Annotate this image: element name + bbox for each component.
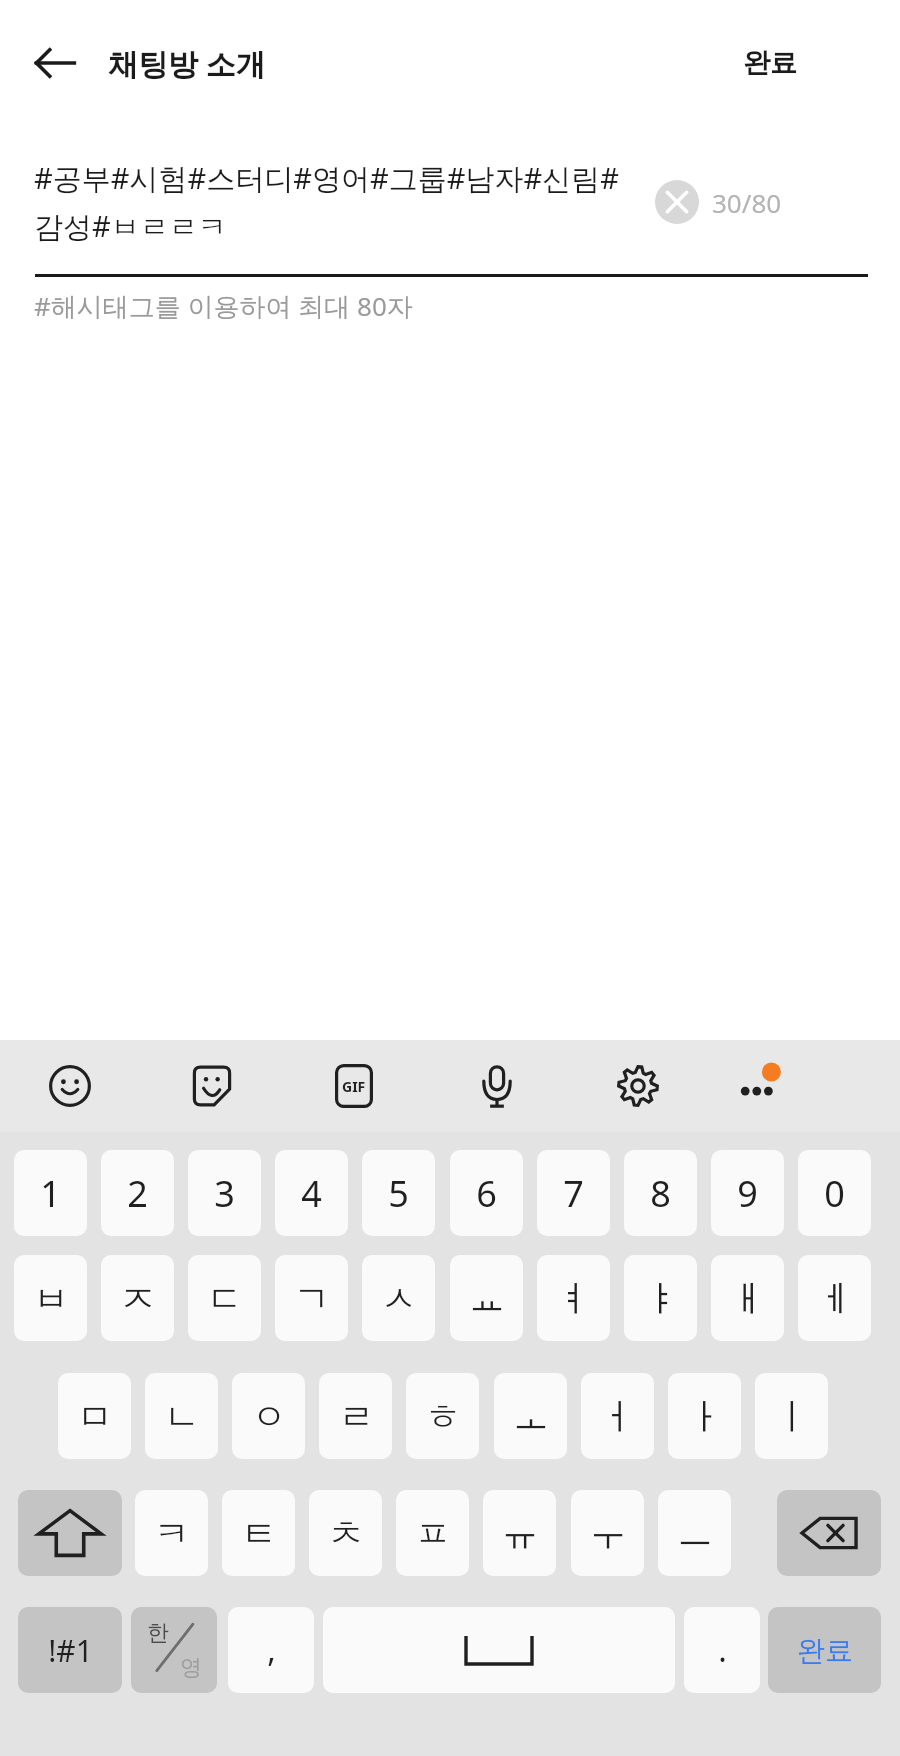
staticText: ㅌ — [241, 1511, 277, 1556]
button[interactable]: ㅡ — [658, 1490, 731, 1576]
staticText: ㅔ — [817, 1276, 853, 1321]
staticText: 1 — [40, 1169, 61, 1218]
button[interactable]: Emoji — [38, 1054, 102, 1118]
staticText: ㅊ — [328, 1511, 364, 1556]
button[interactable]: ㅛ — [450, 1255, 523, 1341]
button[interactable]: ㅍ — [396, 1490, 469, 1576]
staticText: ㄹ — [338, 1394, 374, 1439]
staticText: 채팅방 소개 — [108, 43, 266, 84]
staticText: ㄱ — [294, 1276, 330, 1321]
staticText: ㅅ — [381, 1276, 417, 1321]
staticText: ㅕ — [556, 1276, 592, 1321]
button[interactable]: ㅅ — [362, 1255, 435, 1341]
button[interactable]: ㄴ — [145, 1373, 218, 1459]
button[interactable]: !#1 — [18, 1607, 122, 1693]
staticText: 3 — [214, 1169, 235, 1218]
button[interactable]: ㄹ — [319, 1373, 392, 1459]
button[interactable]: 7 — [537, 1150, 610, 1236]
button[interactable]: 0 — [798, 1150, 871, 1236]
staticText: 8 — [650, 1169, 671, 1218]
staticText: !#1 — [48, 1630, 93, 1671]
staticText: ㅂ — [33, 1276, 69, 1321]
button[interactable]: 5 — [362, 1150, 435, 1236]
staticText: . — [718, 1628, 727, 1672]
staticText: ㅏ — [687, 1394, 723, 1439]
button[interactable]: More options — [720, 1054, 800, 1118]
button[interactable]: ㅏ — [668, 1373, 741, 1459]
button[interactable]: 3 — [188, 1150, 261, 1236]
button[interactable]: 8 — [624, 1150, 697, 1236]
button[interactable]: 완료 — [700, 30, 840, 96]
staticText: ㅜ — [590, 1511, 626, 1556]
button[interactable]: ㅌ — [222, 1490, 295, 1576]
button[interactable]: Korean English toggle — [131, 1607, 217, 1693]
button[interactable]: ㅗ — [494, 1373, 567, 1459]
staticText: 0 — [824, 1169, 845, 1218]
staticText: 영 — [180, 1654, 202, 1682]
button[interactable]: Space — [323, 1607, 675, 1693]
staticText: GIF — [342, 1077, 366, 1096]
button[interactable]: 4 — [275, 1150, 348, 1236]
button[interactable]: ㄷ — [188, 1255, 261, 1341]
button[interactable]: . — [684, 1607, 760, 1693]
button[interactable]: ㅁ — [58, 1373, 131, 1459]
button[interactable]: ㅐ — [711, 1255, 784, 1341]
staticText: ㅠ — [502, 1511, 538, 1556]
button[interactable]: ㄱ — [275, 1255, 348, 1341]
button[interactable]: GIF — [322, 1054, 386, 1118]
button[interactable]: 2 — [101, 1150, 174, 1236]
button[interactable]: Backspace — [777, 1490, 881, 1576]
staticText: ㅁ — [77, 1394, 113, 1439]
button[interactable]: ㅇ — [232, 1373, 305, 1459]
staticText: ㅛ — [469, 1276, 505, 1321]
button[interactable]: ㅣ — [755, 1373, 828, 1459]
staticText: 완료 — [743, 46, 797, 80]
staticText: ㅣ — [774, 1394, 810, 1439]
staticText: ㄴ — [164, 1394, 200, 1439]
button[interactable]: Clear text — [655, 180, 699, 224]
button[interactable]: Shift — [18, 1490, 122, 1576]
button[interactable]: ㅋ — [135, 1490, 208, 1576]
button[interactable]: 1 — [14, 1150, 87, 1236]
staticText: ㅗ — [513, 1394, 549, 1439]
button[interactable]: ㅔ — [798, 1255, 871, 1341]
staticText: ㅎ — [425, 1394, 461, 1439]
staticText: 한 — [147, 1619, 169, 1647]
staticText: ㅐ — [730, 1276, 766, 1321]
staticText: ㅇ — [251, 1394, 287, 1439]
staticText: 6 — [476, 1169, 497, 1218]
button[interactable]: ㅊ — [309, 1490, 382, 1576]
staticText: ㅡ — [677, 1511, 713, 1556]
staticText: 30/80 — [712, 185, 782, 220]
staticText: 2 — [127, 1169, 148, 1218]
button[interactable]: ㅕ — [537, 1255, 610, 1341]
button[interactable]: Back — [18, 30, 92, 96]
button[interactable]: Settings — [606, 1054, 670, 1118]
button[interactable]: 6 — [450, 1150, 523, 1236]
staticText: 7 — [563, 1169, 584, 1218]
staticText: 4 — [301, 1169, 322, 1218]
staticText: 완료 — [797, 1633, 853, 1668]
button[interactable]: ㅓ — [581, 1373, 654, 1459]
button[interactable]: ㅠ — [483, 1490, 556, 1576]
staticText: #공부#시험#스터디#영어#그룹#남자#신림#감성#ㅂㄹㄹㅋ — [34, 158, 634, 246]
staticText: , — [267, 1628, 276, 1672]
staticText: ㄷ — [207, 1276, 243, 1321]
button[interactable]: ㅎ — [406, 1373, 479, 1459]
staticText: #해시태그를 이용하여 최대 80자 — [34, 288, 413, 324]
staticText: 5 — [388, 1169, 409, 1218]
button[interactable]: ㅜ — [571, 1490, 644, 1576]
button[interactable]: 9 — [711, 1150, 784, 1236]
button[interactable]: Voice input — [465, 1054, 529, 1118]
button[interactable]: ㅑ — [624, 1255, 697, 1341]
button[interactable]: 완료 — [768, 1607, 881, 1693]
staticText: ㅑ — [643, 1276, 679, 1321]
staticText: ㅋ — [154, 1511, 190, 1556]
staticText: ㅍ — [415, 1511, 451, 1556]
staticText: 9 — [737, 1169, 758, 1218]
button[interactable]: ㅈ — [101, 1255, 174, 1341]
button[interactable]: Stickers — [180, 1054, 244, 1118]
staticText: ㅈ — [120, 1276, 156, 1321]
button[interactable]: ㅂ — [14, 1255, 87, 1341]
button[interactable]: , — [228, 1607, 314, 1693]
